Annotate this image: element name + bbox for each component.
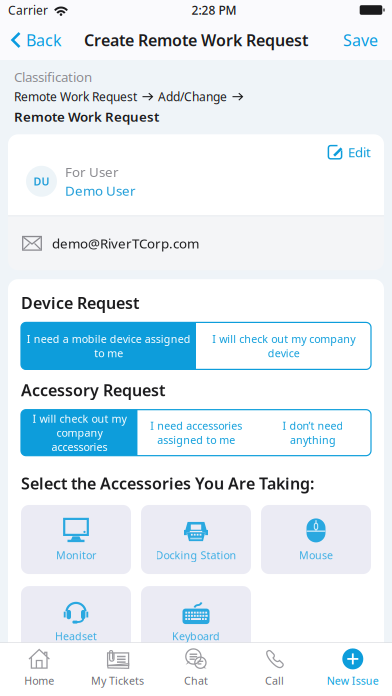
button[interactable]: I need a mobile device assigned to me [21, 322, 196, 369]
staticText: For User [65, 163, 119, 181]
staticText: Device Request [21, 292, 139, 313]
staticText: 2:28 PM [191, 2, 236, 18]
button[interactable]: Back [0, 20, 68, 60]
button[interactable]: Keyboard [141, 586, 251, 655]
staticText: Mouse [299, 548, 333, 562]
staticText: Headset [55, 629, 97, 643]
staticText: Demo User [65, 182, 136, 199]
staticText: Save [343, 29, 378, 51]
button[interactable]: Docking Station [141, 505, 251, 574]
staticText: I need accessories assigned to me [150, 418, 242, 447]
staticText: Keyboard [172, 629, 220, 643]
staticText: Classification [14, 68, 92, 86]
staticText: Remote Work Request [14, 108, 159, 125]
button[interactable]: Chat [157, 645, 235, 694]
staticText: I will check out my company accessories [32, 411, 126, 454]
staticText: Create Remote Work Request [84, 29, 308, 51]
button[interactable]: Call [235, 645, 314, 694]
staticText: Chat [184, 673, 208, 688]
button[interactable]: I will check out my company accessories [21, 410, 138, 456]
button[interactable]: My Tickets [78, 645, 157, 694]
button[interactable]: I don’t need anything [254, 410, 371, 456]
button[interactable]: Mouse [261, 505, 371, 574]
staticText: DU [33, 174, 49, 188]
staticText: Select the Accessories You Are Taking: [21, 473, 314, 494]
staticText: Monitor [56, 548, 96, 562]
button[interactable]: Home [0, 645, 78, 694]
staticText: New Issue [327, 673, 379, 688]
button[interactable]: Headset [21, 586, 131, 655]
staticText: Add/Change [158, 89, 227, 105]
staticText: Edit [348, 143, 371, 161]
staticText: Remote Work Request [14, 89, 137, 105]
staticText: My Tickets [91, 673, 144, 688]
button[interactable]: I will check out my company device [196, 322, 371, 369]
staticText: Back [26, 29, 62, 51]
staticText: I don’t need anything [282, 418, 343, 447]
button[interactable]: I need accessories assigned to me [138, 410, 254, 456]
staticText: I need a mobile device assigned to me [26, 332, 190, 360]
staticText: Home [24, 673, 54, 688]
staticText: I will check out my company device [212, 332, 355, 360]
staticText: demo@RiverTCorp.com [52, 234, 199, 252]
staticText: Carrier [8, 2, 48, 18]
button[interactable]: Edit [327, 134, 384, 163]
button[interactable]: Monitor [21, 505, 131, 574]
staticText: Accessory Request [21, 379, 165, 401]
staticText: Docking Station [155, 548, 236, 562]
button[interactable]: New Issue [314, 645, 392, 694]
staticText: Call [265, 673, 284, 688]
button[interactable]: Save [337, 20, 392, 60]
